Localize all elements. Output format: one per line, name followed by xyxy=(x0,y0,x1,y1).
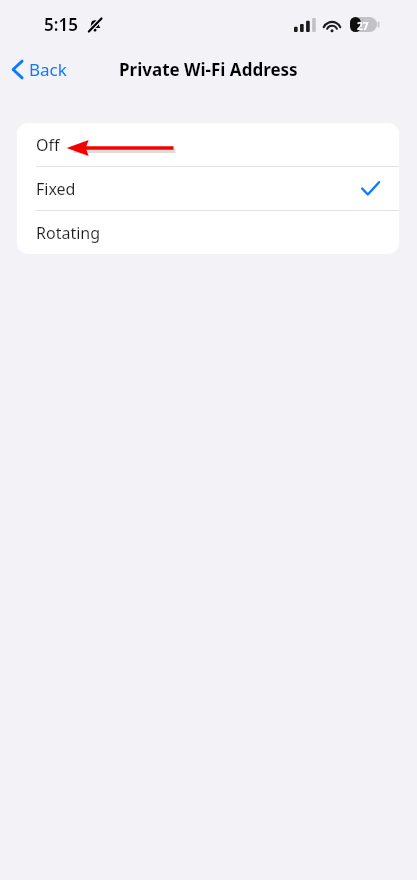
staticText: 5:15 xyxy=(44,13,78,36)
staticText: Off xyxy=(36,134,60,156)
button[interactable]: Fixed xyxy=(17,167,399,210)
button[interactable]: Off xyxy=(17,123,399,166)
staticText: 27 xyxy=(357,19,369,33)
staticText: Back xyxy=(29,58,67,81)
staticText: Fixed xyxy=(36,178,76,200)
button[interactable]: Back xyxy=(6,55,73,84)
staticText: Private Wi-Fi Address xyxy=(119,58,298,81)
button[interactable]: Rotating xyxy=(17,211,399,254)
staticText: Rotating xyxy=(36,222,101,244)
